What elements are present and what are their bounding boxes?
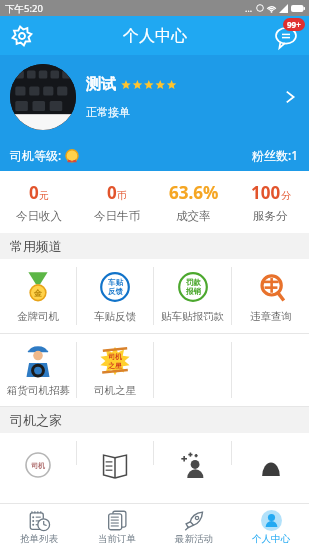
staticText: 当前订单 — [98, 533, 136, 545]
staticText: 报销 — [186, 287, 201, 296]
staticText: 金牌司机 — [17, 310, 59, 323]
button[interactable]: Driver home item — [0, 433, 76, 473]
button[interactable]: 当前订单 — [78, 504, 155, 550]
button[interactable]: 0 — [0, 171, 78, 233]
staticText: 个人中心 — [123, 26, 187, 46]
staticText: 罚款 — [186, 278, 201, 287]
button[interactable]: Driver home item — [77, 433, 153, 473]
staticText: 元 — [39, 189, 49, 202]
staticText: 下午5:20 — [5, 2, 43, 15]
staticText: 个人中心 — [252, 533, 290, 545]
staticText: 金 — [34, 288, 42, 298]
button[interactable]: Messages — [269, 19, 303, 53]
staticText: 0 — [29, 181, 39, 204]
staticText: 反馈 — [108, 287, 123, 296]
staticText: 司机 — [31, 461, 45, 470]
staticText: 粉丝数:1 — [252, 147, 299, 163]
staticText: 服务分 — [253, 209, 288, 223]
button[interactable]: 63.6% — [155, 171, 232, 233]
staticText: 贴车贴报罚款 — [161, 310, 224, 323]
staticText: 今日牛币 — [94, 209, 140, 223]
staticText: 车贴反馈 — [94, 310, 136, 323]
button[interactable]: 抢单列表 — [0, 504, 78, 550]
button[interactable]: 车贴 — [77, 259, 153, 333]
staticText: 成交率 — [176, 209, 211, 223]
button[interactable]: 罚款 — [154, 259, 231, 333]
staticText: 车贴 — [108, 278, 123, 287]
staticText: 之星 — [108, 361, 122, 370]
staticText: 最新活动 — [175, 533, 213, 545]
staticText: 0 — [107, 181, 117, 204]
staticText: 司机等级: — [10, 147, 62, 163]
staticText: 司机之星 — [94, 384, 136, 397]
button[interactable]: 0 — [78, 171, 155, 233]
button[interactable]: Settings — [6, 20, 38, 52]
staticText: 司机 — [108, 352, 122, 361]
staticText: 99+ — [287, 19, 301, 30]
staticText: 箱货司机招募 — [7, 384, 70, 397]
button[interactable]: 最新活动 — [155, 504, 232, 550]
staticText: 司机之家 — [10, 412, 62, 428]
staticText: 违章查询 — [250, 310, 292, 323]
button[interactable]: Driver home item — [154, 433, 231, 473]
staticText: 正常接单 — [86, 105, 130, 119]
button[interactable]: 箱货司机招募 — [0, 334, 76, 406]
staticText: 币 — [117, 189, 127, 202]
button[interactable]: 违章查询 — [232, 259, 309, 333]
staticText: 100 — [251, 181, 281, 204]
staticText: 常用频道 — [10, 238, 62, 254]
button[interactable]: 100 — [232, 171, 309, 233]
button[interactable]: 金 — [0, 259, 76, 333]
staticText: 抢单列表 — [20, 533, 58, 545]
button[interactable]: 测试 — [0, 55, 309, 139]
button[interactable]: 司机 — [77, 334, 153, 406]
staticText: 分 — [281, 189, 291, 202]
staticText: … — [245, 2, 253, 14]
staticText: 今日收入 — [16, 209, 62, 223]
staticText: 63.6% — [169, 181, 219, 204]
button[interactable]: Driver home item — [232, 433, 309, 473]
staticText: 测试 — [86, 75, 116, 94]
button[interactable]: 个人中心 — [232, 504, 309, 550]
